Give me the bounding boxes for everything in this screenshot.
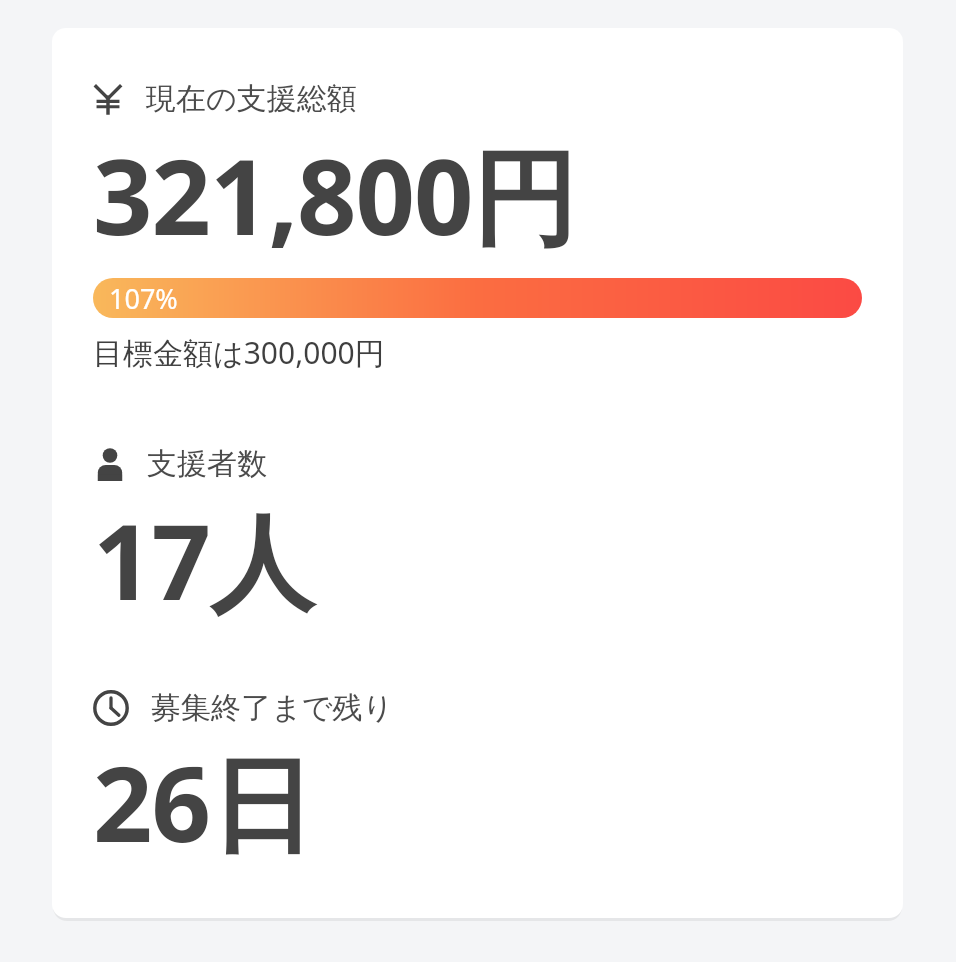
staticText: 26日 xyxy=(93,731,313,873)
other: Time remaining xyxy=(93,690,129,726)
other: Supporters xyxy=(93,447,127,481)
button[interactable]: 107% xyxy=(93,278,862,318)
staticText: 募集終了まで残り xyxy=(151,689,394,727)
staticText: 107% xyxy=(109,280,178,317)
button[interactable]: Days remaining xyxy=(93,689,862,727)
staticText: 目標金額は300,000円 xyxy=(93,332,385,373)
button[interactable]: Total raised xyxy=(93,80,862,118)
staticText: 支援者数 xyxy=(147,445,267,483)
button[interactable]: Supporters xyxy=(93,445,862,483)
staticText: 17人 xyxy=(93,489,313,631)
staticText: 321,800円 xyxy=(93,124,576,266)
staticText: 現在の支援総額 xyxy=(146,80,357,118)
other: Yen xyxy=(93,84,123,114)
